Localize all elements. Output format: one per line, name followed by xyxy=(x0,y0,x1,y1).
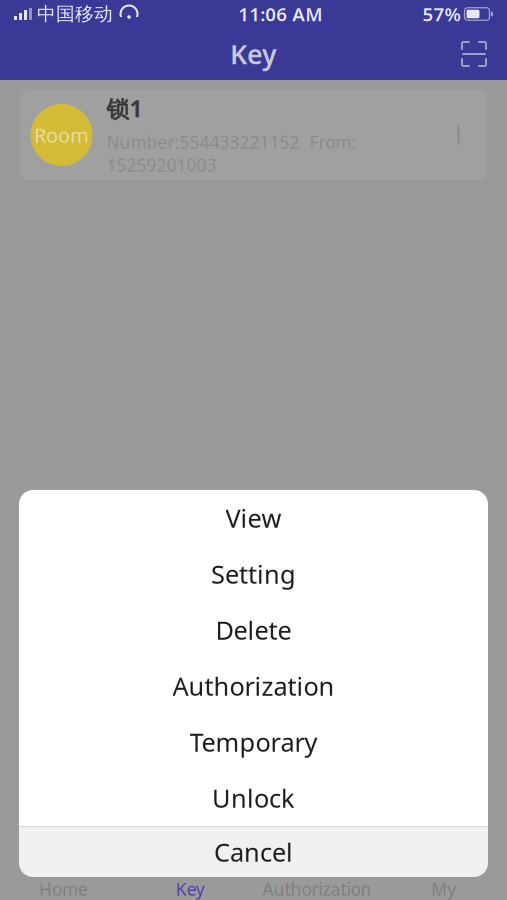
button[interactable]: Scan QR code xyxy=(451,31,497,77)
staticText: Number:554433221152 From:15259201003 xyxy=(106,130,356,176)
staticText: Key xyxy=(176,877,205,900)
staticText: View xyxy=(225,501,281,535)
staticText: Room xyxy=(34,122,89,148)
staticText: 中国移动 xyxy=(37,2,113,25)
staticText: Temporary xyxy=(189,725,317,759)
staticText: Authorization xyxy=(172,669,334,703)
staticText: 11:06 AM xyxy=(238,2,322,26)
button[interactable]: Temporary xyxy=(19,714,488,770)
staticText: Authorization xyxy=(262,877,371,900)
button[interactable]: Authorization xyxy=(253,878,380,900)
button[interactable]: Cancel xyxy=(19,827,488,877)
staticText: 57% xyxy=(422,2,460,26)
button[interactable]: View xyxy=(19,490,488,546)
staticText: Cancel xyxy=(214,835,293,869)
button[interactable]: Authorization xyxy=(19,658,488,714)
button[interactable]: Key xyxy=(127,878,254,900)
button[interactable]: Delete xyxy=(19,602,488,658)
staticText: Delete xyxy=(215,613,291,647)
button[interactable]: Setting xyxy=(19,546,488,602)
button[interactable]: Room xyxy=(20,90,486,180)
staticText: Setting xyxy=(211,557,296,591)
button[interactable]: My xyxy=(380,878,507,900)
staticText: Key xyxy=(230,36,277,72)
staticText: My xyxy=(431,877,456,900)
button[interactable]: Unlock xyxy=(19,770,488,826)
staticText: Home xyxy=(39,877,88,900)
staticText: 锁1 xyxy=(106,93,142,123)
button[interactable]: Home xyxy=(0,878,127,900)
staticText: Unlock xyxy=(212,781,295,815)
